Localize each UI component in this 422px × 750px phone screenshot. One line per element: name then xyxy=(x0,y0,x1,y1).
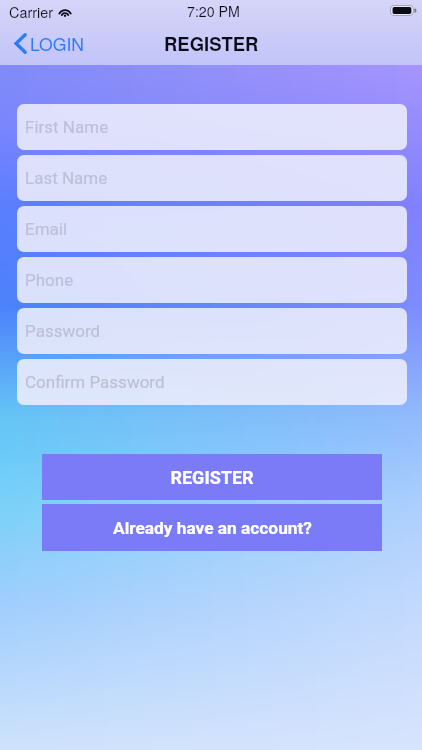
button[interactable]: Email xyxy=(17,206,407,252)
staticText: Last Name xyxy=(25,168,108,188)
staticText: Confirm Password xyxy=(25,372,165,392)
button[interactable]: REGISTER xyxy=(42,454,382,500)
staticText: Already have an account? xyxy=(113,518,312,538)
button[interactable]: Last Name xyxy=(17,155,407,201)
staticText: Phone xyxy=(25,270,74,290)
button[interactable]: LOGIN xyxy=(7,28,95,62)
staticText: LOGIN xyxy=(30,31,85,56)
staticText: 7:20 PM xyxy=(187,1,240,21)
button[interactable]: Password xyxy=(17,308,407,354)
staticText: First Name xyxy=(25,117,109,137)
staticText: Email xyxy=(25,219,68,239)
button[interactable]: Phone xyxy=(17,257,407,303)
staticText: Carrier xyxy=(9,1,53,22)
staticText: REGISTER xyxy=(170,467,254,488)
staticText: REGISTER xyxy=(164,30,259,56)
button[interactable]: First Name xyxy=(17,104,407,150)
staticText: Password xyxy=(25,321,101,341)
button[interactable]: Already have an account? xyxy=(42,504,382,551)
button[interactable]: Confirm Password xyxy=(17,359,407,405)
